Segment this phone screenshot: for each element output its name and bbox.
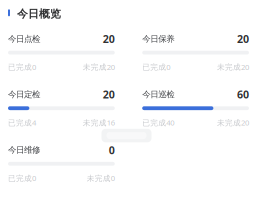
staticText: 已完成40 [142,117,174,128]
staticText: 已完成0 [142,62,170,72]
button[interactable]: 今日巡检 [142,87,249,128]
button[interactable]: 今日维修 [8,143,115,183]
staticText: 20 [237,32,249,46]
staticText: 已完成0 [8,62,36,72]
staticText: 未完成20 [83,62,115,72]
staticText: 未完成20 [217,62,249,72]
staticText: 20 [103,87,115,102]
staticText: 已完成0 [8,173,36,183]
staticText: 今日保养 [142,33,174,44]
staticText: 今日巡检 [142,89,174,100]
staticText: 未完成0 [87,173,115,183]
button[interactable]: 今日保养 [142,32,249,72]
staticText: 20 [103,32,115,46]
staticText: 0 [109,143,115,157]
button[interactable]: 今日定检 [8,87,115,128]
staticText: 今日维修 [8,145,40,155]
staticText: 60 [237,87,249,102]
staticText: 未完成20 [217,117,249,128]
staticText: 今日概览 [17,7,61,21]
staticText: 今日点检 [8,33,40,44]
staticText: 已完成4 [8,117,36,128]
button[interactable]: 今日点检 [8,32,115,72]
staticText: 未完成16 [83,117,115,128]
staticText: 今日定检 [8,89,40,100]
